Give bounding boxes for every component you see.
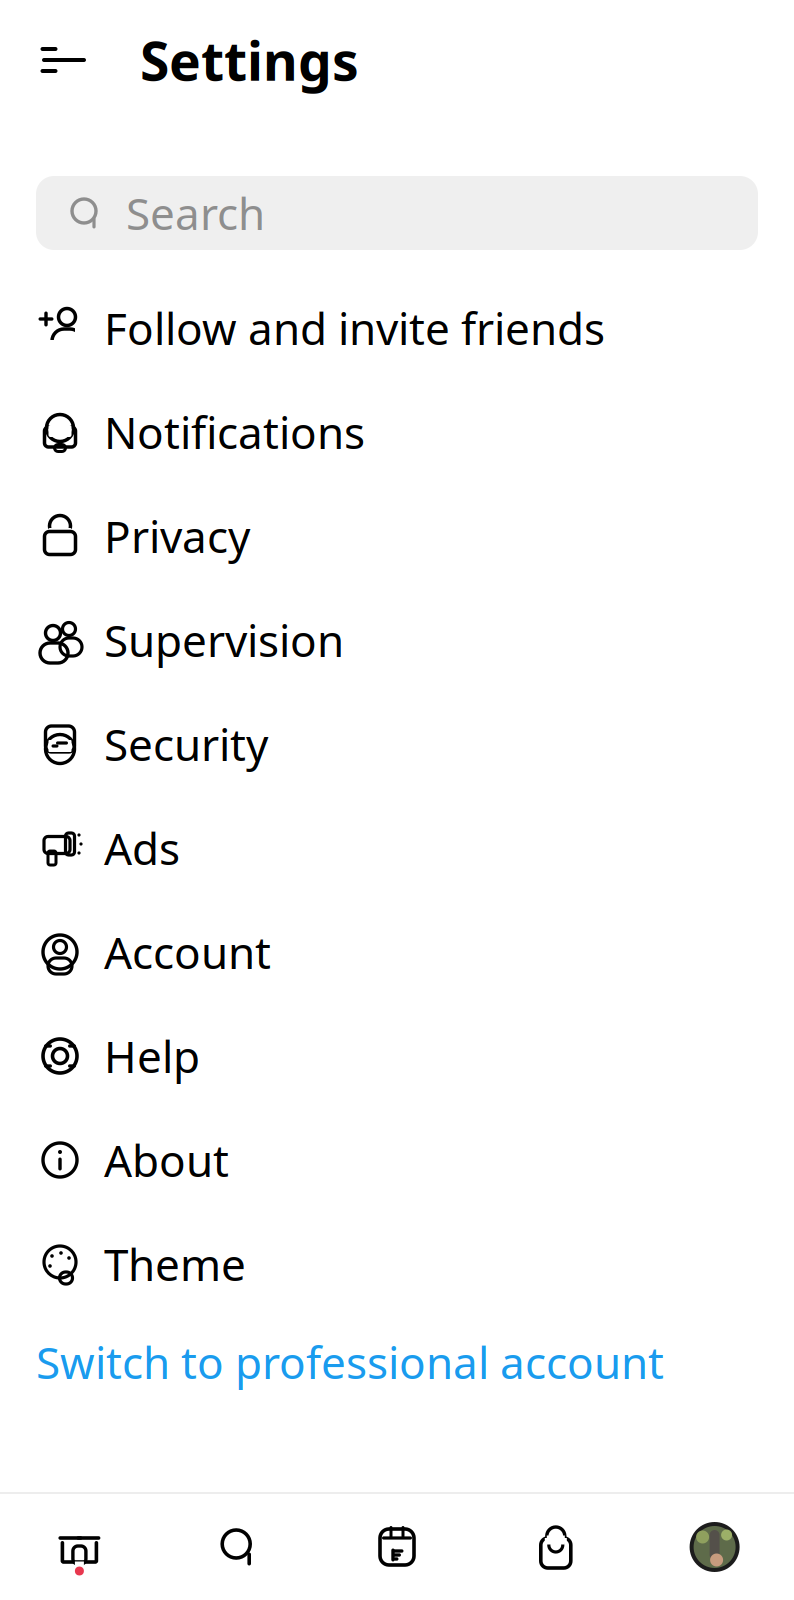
button[interactable]: Supervision <box>0 588 794 692</box>
staticText: Settings <box>140 25 359 95</box>
button[interactable]: Reels <box>318 1494 476 1600</box>
staticText: Account <box>104 923 271 981</box>
staticText: About <box>104 1131 229 1189</box>
button[interactable]: Search <box>36 176 758 250</box>
button[interactable]: Profile <box>635 1494 794 1600</box>
button[interactable]: Help <box>0 1004 794 1108</box>
staticText: Switch to professional account <box>36 1333 664 1391</box>
button[interactable]: Account <box>0 900 794 1004</box>
staticText: Supervision <box>104 611 344 669</box>
button[interactable]: Security <box>0 692 794 796</box>
button[interactable]: Shop <box>476 1494 635 1600</box>
button[interactable]: About <box>0 1108 794 1212</box>
staticText: Theme <box>104 1235 246 1293</box>
button[interactable]: Theme <box>0 1212 794 1316</box>
staticText: Help <box>104 1027 200 1085</box>
button[interactable]: Privacy <box>0 484 794 588</box>
staticText: Ads <box>104 819 180 877</box>
staticText: Search <box>126 184 265 242</box>
button[interactable]: Switch to professional account <box>0 1316 794 1408</box>
staticText: Notifications <box>104 403 365 461</box>
button[interactable]: Ads <box>0 796 794 900</box>
staticText: Privacy <box>104 507 250 565</box>
button[interactable]: Home <box>0 1494 159 1600</box>
button[interactable]: Search <box>159 1494 318 1600</box>
staticText: Security <box>104 715 268 773</box>
button[interactable]: Back <box>26 24 98 96</box>
button[interactable]: Follow and invite friends <box>0 276 794 380</box>
staticText: Follow and invite friends <box>104 299 605 357</box>
button[interactable]: Notifications <box>0 380 794 484</box>
